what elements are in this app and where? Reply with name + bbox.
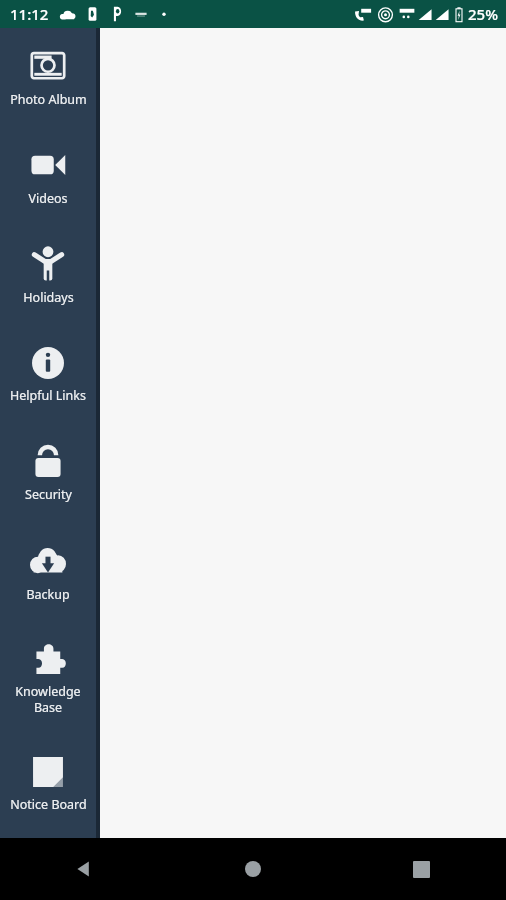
button[interactable]: Notice Board bbox=[0, 734, 96, 833]
staticText: Helpful Links bbox=[10, 387, 86, 404]
staticText: Photo Album bbox=[10, 91, 87, 108]
button[interactable]: Knowledge Base bbox=[0, 622, 96, 734]
staticText: Knowledge Base bbox=[2, 683, 94, 715]
button[interactable]: Home bbox=[168, 838, 337, 900]
staticText: Security bbox=[25, 486, 72, 503]
staticText: 11:12 bbox=[10, 4, 49, 24]
button[interactable]: Recent apps bbox=[337, 838, 506, 900]
button[interactable]: Back bbox=[0, 838, 168, 900]
staticText: Notice Board bbox=[10, 796, 87, 813]
button[interactable]: Videos bbox=[0, 127, 96, 226]
button[interactable]: Backup bbox=[0, 523, 96, 622]
button[interactable]: Holidays bbox=[0, 226, 96, 325]
button[interactable]: Helpful Links bbox=[0, 325, 96, 424]
staticText: Backup bbox=[26, 586, 70, 603]
button[interactable]: Security bbox=[0, 424, 96, 523]
button[interactable]: Photo Album bbox=[0, 28, 96, 127]
staticText: 25% bbox=[468, 4, 498, 24]
staticText: Videos bbox=[28, 190, 68, 207]
staticText: Holidays bbox=[23, 289, 74, 306]
